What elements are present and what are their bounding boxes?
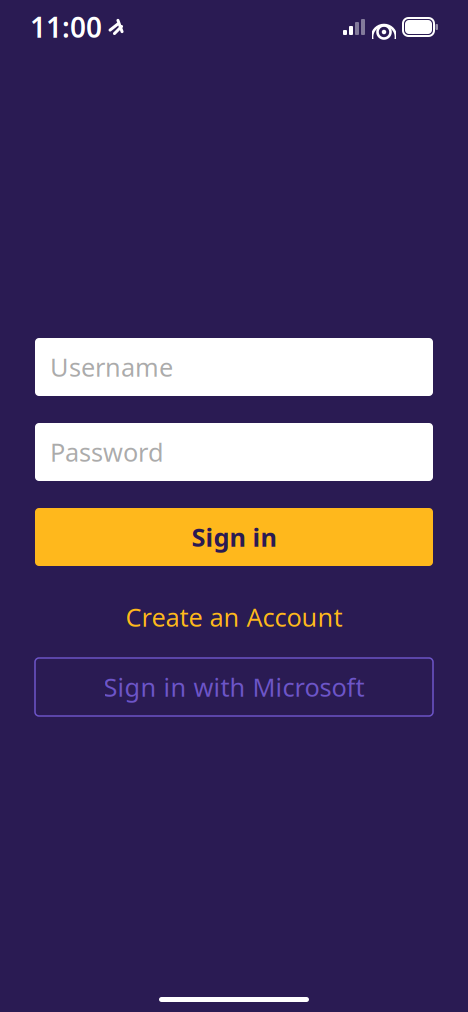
button[interactable]: Sign in bbox=[35, 508, 433, 566]
staticText: Username bbox=[50, 350, 173, 384]
button[interactable]: Create an Account bbox=[35, 597, 433, 637]
button[interactable]: Username bbox=[35, 338, 433, 396]
staticText: Password bbox=[50, 435, 164, 469]
button[interactable]: Password bbox=[35, 423, 433, 481]
button[interactable]: Sign in with Microsoft bbox=[35, 658, 433, 716]
staticText: Sign in with Microsoft bbox=[103, 670, 364, 704]
staticText: 11:00 bbox=[30, 8, 102, 46]
staticText: Create an Account bbox=[125, 600, 342, 634]
staticText: Sign in bbox=[191, 520, 276, 554]
